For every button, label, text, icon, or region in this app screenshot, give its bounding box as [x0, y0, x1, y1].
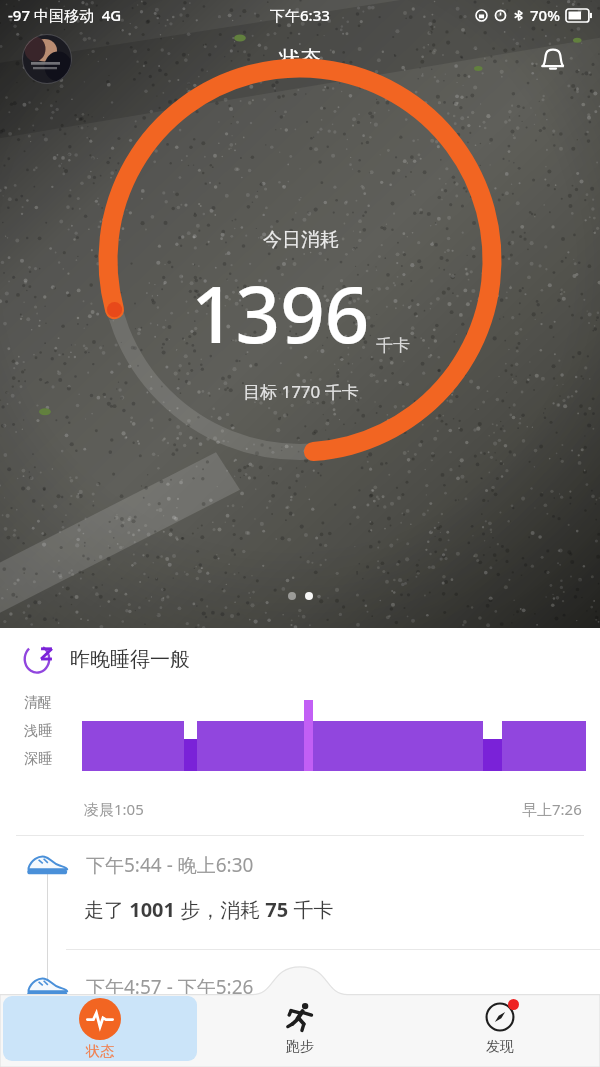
button[interactable]: Profile — [22, 34, 72, 84]
staticText: 状态 — [279, 46, 321, 72]
staticText: 昨晚睡得一般 — [70, 647, 190, 672]
staticText: 走了 1001 步，消耗 75 千卡 — [84, 896, 334, 923]
button[interactable]: 下午4:57 - 下午5:26 — [0, 974, 600, 1000]
staticText: 状态 — [86, 1043, 114, 1061]
button[interactable]: Notifications — [530, 36, 576, 82]
staticText: 今日消耗 — [263, 228, 339, 252]
staticText: 下午4:57 - 下午5:26 — [86, 974, 254, 1000]
staticText: 目标 1770 千卡 — [243, 380, 359, 403]
staticText: 下午6:33 — [270, 5, 330, 25]
staticText: 70% — [530, 5, 560, 25]
staticText: 千卡 — [376, 335, 410, 356]
staticText: 下午5:44 - 晚上6:30 — [86, 852, 254, 878]
button[interactable]: 下午5:44 - 晚上6:30 — [0, 852, 600, 878]
button[interactable]: 状态 — [3, 996, 197, 1061]
staticText: -97 中国移动 4G — [8, 5, 122, 25]
staticText: 凌晨1:05 — [84, 799, 144, 819]
staticText: 清醒 — [24, 694, 52, 712]
staticText: 跑步 — [286, 1038, 314, 1056]
button[interactable]: 发现 — [400, 990, 600, 1067]
staticText: 深睡 — [24, 750, 52, 768]
staticText: 浅睡 — [24, 722, 52, 740]
staticText: 早上7:26 — [522, 799, 582, 819]
button[interactable]: 跑步 — [200, 990, 400, 1067]
button[interactable]: 昨晚睡得一般 — [0, 628, 600, 836]
staticText: 发现 — [486, 1038, 514, 1056]
staticText: 1396 — [191, 260, 370, 366]
